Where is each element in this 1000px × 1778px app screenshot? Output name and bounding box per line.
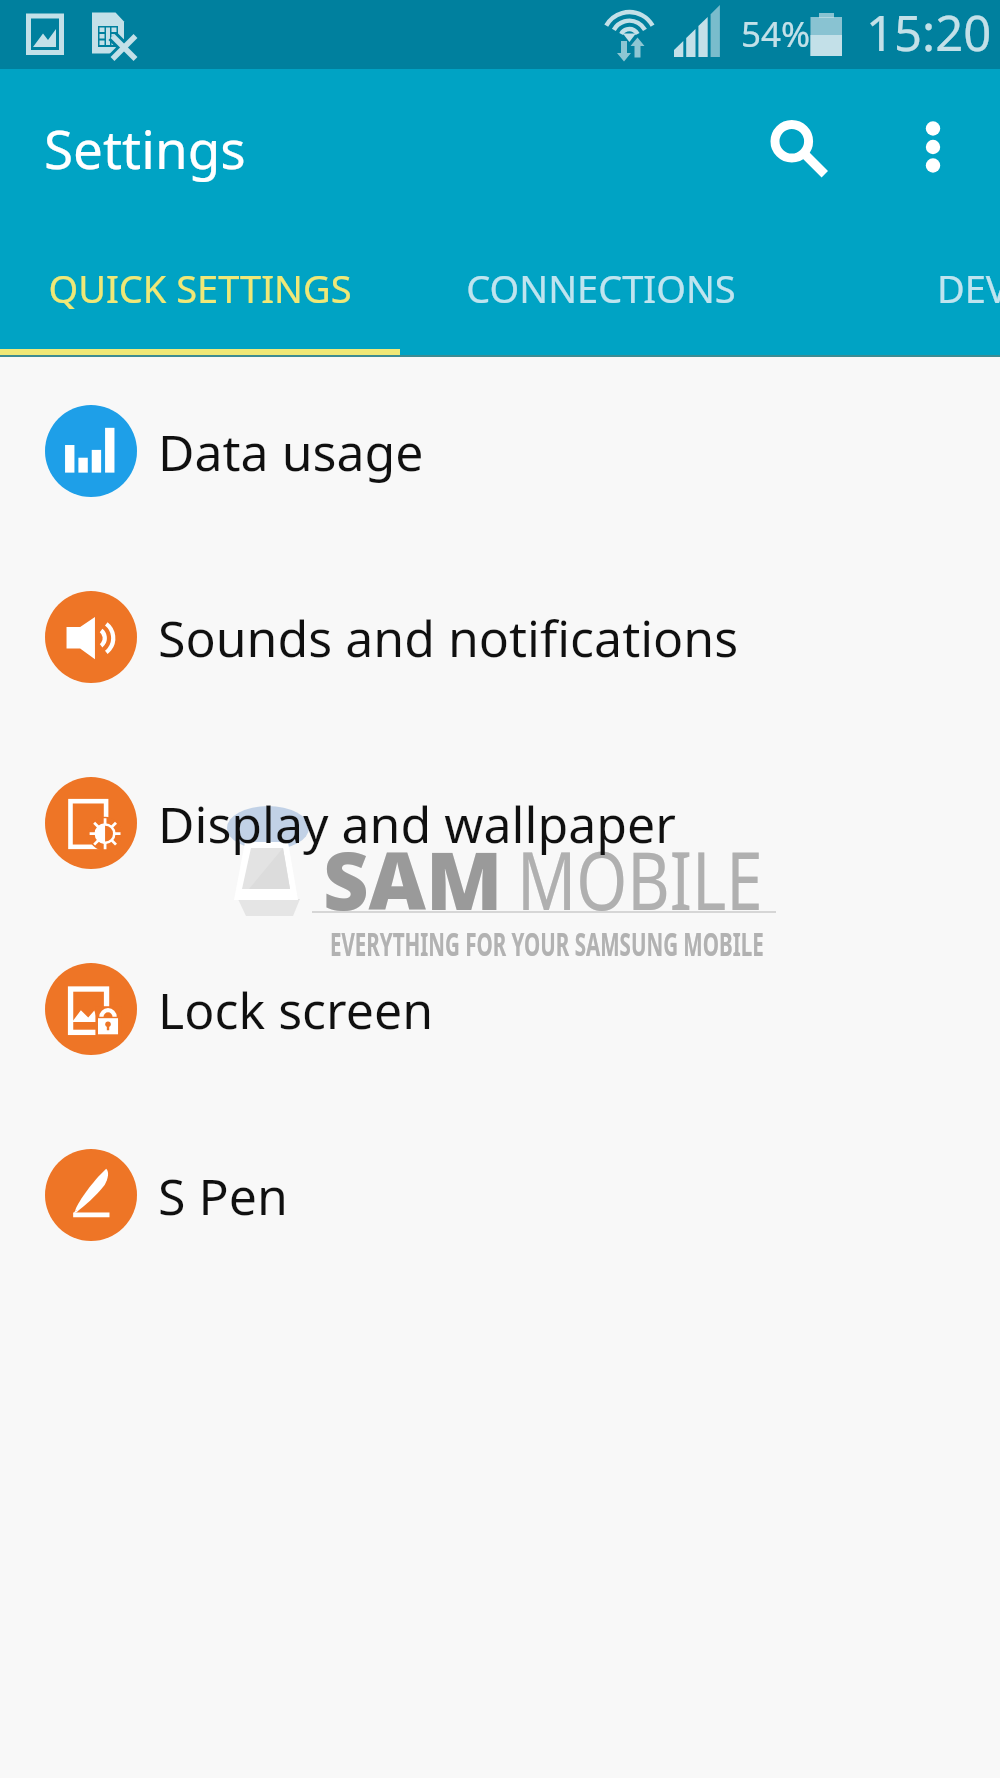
- button[interactable]: CONNECTIONS: [400, 244, 802, 357]
- staticText: EVERYTHING FOR YOUR SAMSUNG MOBILE: [330, 922, 764, 965]
- button[interactable]: Sounds and notifications: [0, 544, 1000, 730]
- staticText: QUICK SETTINGS: [48, 262, 352, 314]
- staticText: Display and wallpaper: [158, 790, 676, 858]
- staticText: MOBILE: [517, 824, 763, 934]
- staticText: CONNECTIONS: [466, 262, 736, 314]
- button[interactable]: More options: [883, 97, 983, 197]
- button[interactable]: DEVICE: [802, 244, 1000, 357]
- staticText: S Pen: [158, 1162, 288, 1230]
- button[interactable]: S Pen: [0, 1102, 1000, 1288]
- button[interactable]: Search: [745, 96, 855, 206]
- staticText: Lock screen: [158, 976, 434, 1044]
- button[interactable]: QUICK SETTINGS: [0, 244, 400, 357]
- button[interactable]: Lock screen: [0, 916, 1000, 1102]
- staticText: Settings: [44, 112, 246, 184]
- button[interactable]: Display and wallpaper: [0, 730, 1000, 916]
- staticText: Sounds and notifications: [158, 604, 739, 672]
- button[interactable]: Data usage: [0, 358, 1000, 544]
- staticText: SAM: [323, 824, 503, 934]
- staticText: DEVICE: [937, 262, 1000, 314]
- staticText: Data usage: [158, 418, 424, 486]
- staticText: 15:20: [866, 0, 992, 66]
- staticText: 54%: [741, 10, 811, 58]
